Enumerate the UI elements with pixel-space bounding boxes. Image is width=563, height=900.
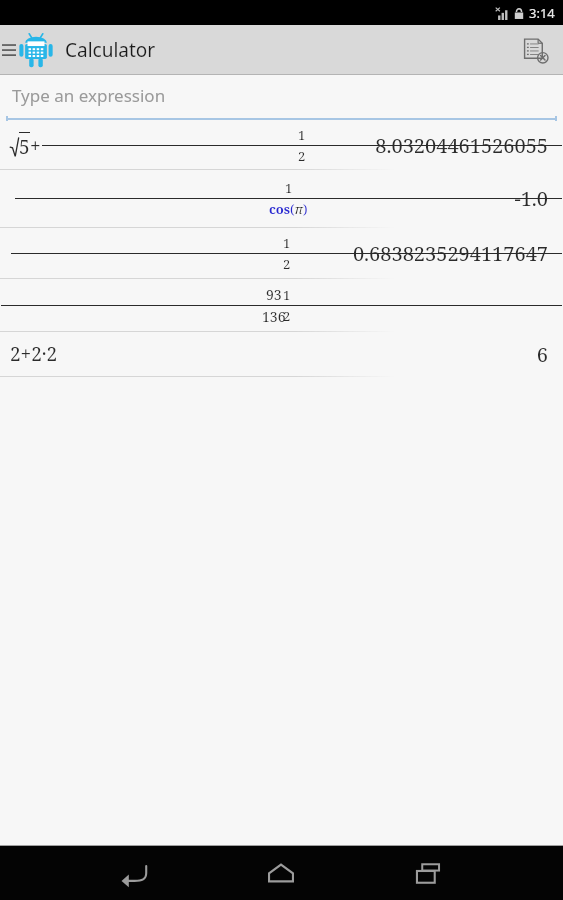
- staticText: 8.03204461526055: [375, 132, 548, 159]
- staticText: Calculator: [65, 37, 156, 63]
- staticText: +: [30, 133, 41, 159]
- staticText: 6: [536, 341, 548, 368]
- staticText: 2: [283, 255, 291, 273]
- button[interactable]: Home: [244, 846, 318, 900]
- staticText: 1: [298, 126, 306, 144]
- staticText: cos(π): [269, 200, 308, 218]
- staticText: Type an expression: [12, 84, 166, 107]
- button[interactable]: Recent apps: [391, 846, 465, 900]
- staticText: 2: [298, 147, 306, 165]
- button[interactable]: 1: [0, 228, 563, 279]
- staticText: 3:14: [529, 4, 555, 22]
- staticText: 2: [283, 307, 291, 325]
- button[interactable]: 1: [0, 170, 563, 228]
- button[interactable]: Navigation drawer: [0, 25, 55, 75]
- button[interactable]: 5: [0, 122, 563, 170]
- staticText: 5: [19, 134, 30, 160]
- button[interactable]: Back: [97, 846, 171, 900]
- staticText: 1: [285, 179, 293, 197]
- staticText: 136: [262, 307, 286, 326]
- button[interactable]: 2+2·2: [0, 332, 563, 377]
- staticText: 1: [283, 234, 291, 252]
- staticText: 0.6838235294117647: [352, 240, 548, 267]
- button[interactable]: Type an expression: [0, 75, 563, 122]
- staticText: 2+2·2: [10, 341, 58, 367]
- staticText: 93: [266, 285, 282, 304]
- button[interactable]: Clear history: [507, 25, 563, 75]
- staticText: 1: [283, 286, 291, 304]
- staticText: -1.0: [514, 185, 548, 212]
- button[interactable]: 1: [0, 279, 563, 332]
